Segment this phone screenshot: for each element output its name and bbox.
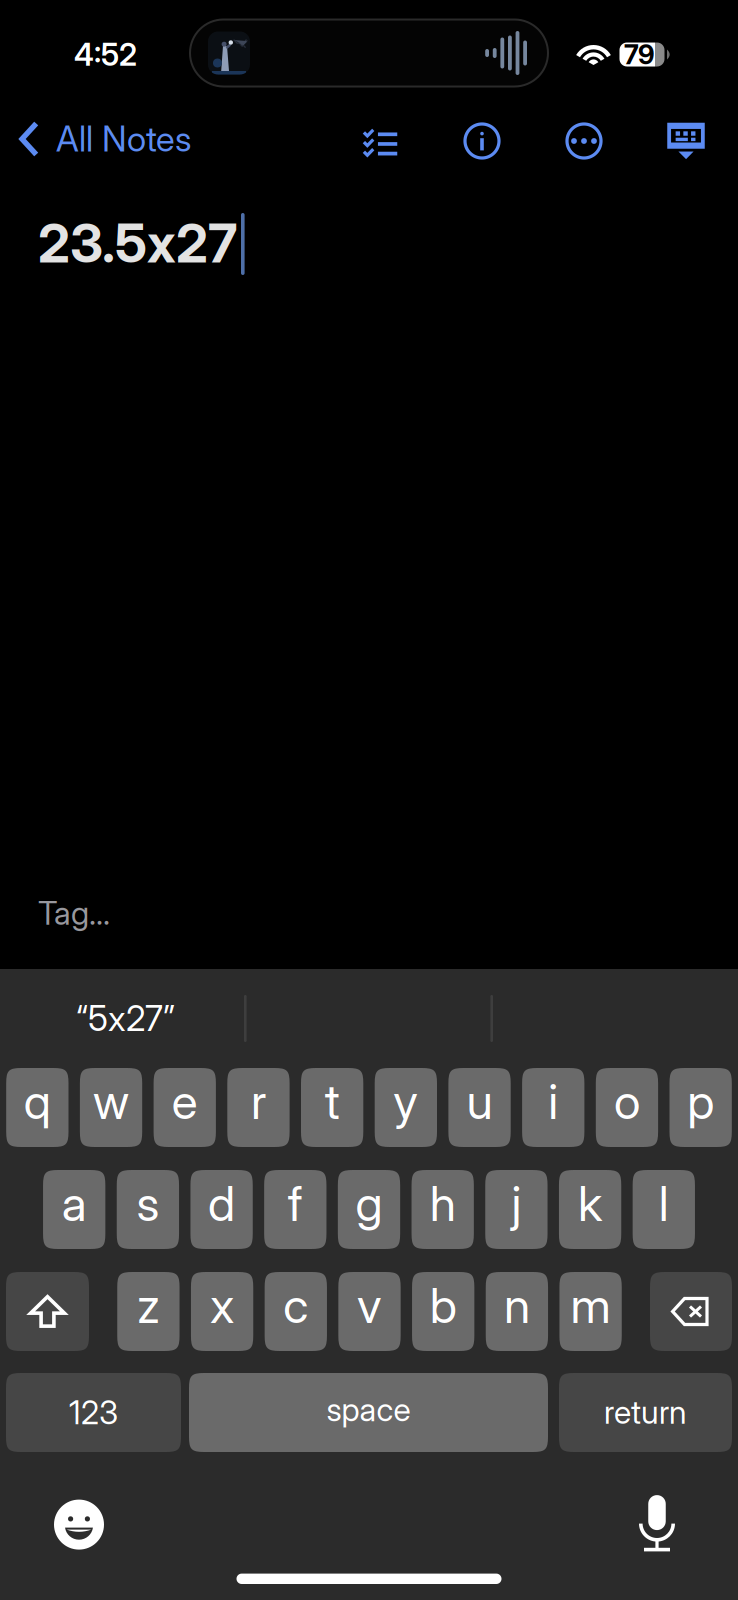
button[interactable]: c <box>265 1272 327 1351</box>
button[interactable]: d <box>190 1170 253 1249</box>
staticText: x <box>147 211 176 275</box>
staticText: v <box>357 1276 382 1335</box>
button[interactable]: return <box>559 1373 732 1452</box>
staticText: q <box>24 1072 51 1131</box>
staticText: y <box>393 1072 418 1131</box>
staticText: d <box>208 1174 235 1233</box>
staticText: 123 <box>69 1393 118 1432</box>
staticText: e <box>172 1072 198 1131</box>
staticText: r <box>251 1072 266 1131</box>
button[interactable]: All Notes <box>0 105 201 173</box>
staticText: o <box>614 1072 640 1131</box>
staticText: s <box>136 1174 159 1233</box>
staticText: 27” <box>126 997 175 1039</box>
button[interactable]: x <box>191 1272 253 1351</box>
button[interactable]: Emoji <box>46 1492 112 1558</box>
staticText: i <box>548 1072 558 1131</box>
button[interactable]: Hide Keyboard <box>653 105 719 173</box>
staticText: space <box>326 1390 410 1429</box>
staticText: 4:52 <box>74 36 137 73</box>
button[interactable]: v <box>338 1272 401 1351</box>
staticText: l <box>659 1174 669 1233</box>
staticText: b <box>430 1276 457 1335</box>
button[interactable]: a <box>43 1170 105 1249</box>
staticText: All Notes <box>56 118 191 160</box>
staticText: return <box>604 1393 687 1431</box>
button[interactable]: m <box>559 1272 622 1351</box>
staticText: “5 <box>76 997 108 1039</box>
staticText: x <box>210 1276 234 1335</box>
button[interactable]: b <box>412 1272 474 1351</box>
button[interactable]: y <box>375 1068 437 1147</box>
staticText: n <box>504 1276 530 1335</box>
button[interactable]: n <box>486 1272 548 1351</box>
staticText: 23.5 <box>38 211 147 275</box>
button[interactable]: r <box>227 1068 290 1147</box>
button[interactable]: u <box>448 1068 511 1147</box>
button[interactable]: q <box>6 1068 68 1147</box>
button[interactable]: p <box>669 1068 732 1147</box>
staticText: t <box>325 1072 340 1131</box>
button[interactable]: j <box>485 1170 547 1249</box>
staticText: Tag... <box>38 894 110 932</box>
staticText: a <box>62 1174 87 1233</box>
staticText: p <box>687 1072 714 1131</box>
button[interactable]: k <box>559 1170 621 1249</box>
staticText: z <box>137 1276 160 1335</box>
button[interactable]: s <box>117 1170 179 1249</box>
button[interactable]: Delete <box>650 1272 732 1351</box>
button[interactable]: z <box>117 1272 179 1351</box>
staticText: 27 <box>176 211 237 275</box>
staticText: c <box>283 1276 308 1335</box>
button[interactable]: o <box>596 1068 658 1147</box>
staticText: k <box>578 1174 602 1233</box>
staticText: g <box>355 1174 382 1233</box>
staticText: u <box>466 1072 492 1131</box>
button[interactable]: Info <box>449 105 515 173</box>
staticText: j <box>511 1174 521 1233</box>
staticText: 79 <box>624 38 654 71</box>
button[interactable]: Dictation <box>624 1491 690 1557</box>
button[interactable]: Shift <box>6 1272 89 1351</box>
staticText: w <box>93 1072 129 1131</box>
button[interactable]: More <box>551 105 617 173</box>
button[interactable]: e <box>154 1068 216 1147</box>
button[interactable]: w <box>80 1068 142 1147</box>
button[interactable]: space <box>189 1373 548 1452</box>
button[interactable]: l <box>633 1170 695 1249</box>
staticText: x <box>108 997 126 1039</box>
button[interactable]: t <box>301 1068 363 1147</box>
button[interactable]: f <box>264 1170 326 1249</box>
button[interactable]: 123 <box>6 1373 181 1452</box>
button[interactable]: Checklist <box>347 105 413 173</box>
staticText: h <box>430 1174 456 1233</box>
staticText: m <box>571 1276 611 1335</box>
button[interactable]: h <box>411 1170 474 1249</box>
button[interactable]: g <box>338 1170 400 1249</box>
staticText: f <box>288 1174 303 1233</box>
button[interactable]: i <box>522 1068 584 1147</box>
